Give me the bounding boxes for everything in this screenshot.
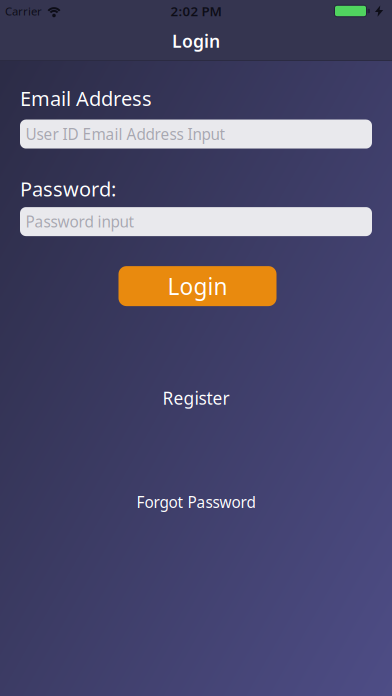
staticText: Login bbox=[172, 29, 220, 53]
staticText: Email Address bbox=[20, 85, 152, 112]
button[interactable]: Forgot Password bbox=[136, 492, 255, 513]
button[interactable]: User ID Email Address Input bbox=[20, 120, 372, 149]
button[interactable]: Register bbox=[162, 386, 229, 410]
staticText: 2:02 PM bbox=[170, 2, 221, 20]
button[interactable]: Login bbox=[118, 266, 276, 306]
staticText: Register bbox=[162, 386, 229, 410]
staticText: Password input bbox=[25, 211, 134, 232]
staticText: User ID Email Address Input bbox=[25, 124, 225, 144]
staticText: Password: bbox=[20, 176, 116, 202]
button[interactable]: Password input bbox=[20, 207, 372, 236]
staticText: Carrier bbox=[5, 3, 42, 19]
staticText: Login bbox=[167, 271, 227, 301]
staticText: Forgot Password bbox=[136, 492, 255, 513]
